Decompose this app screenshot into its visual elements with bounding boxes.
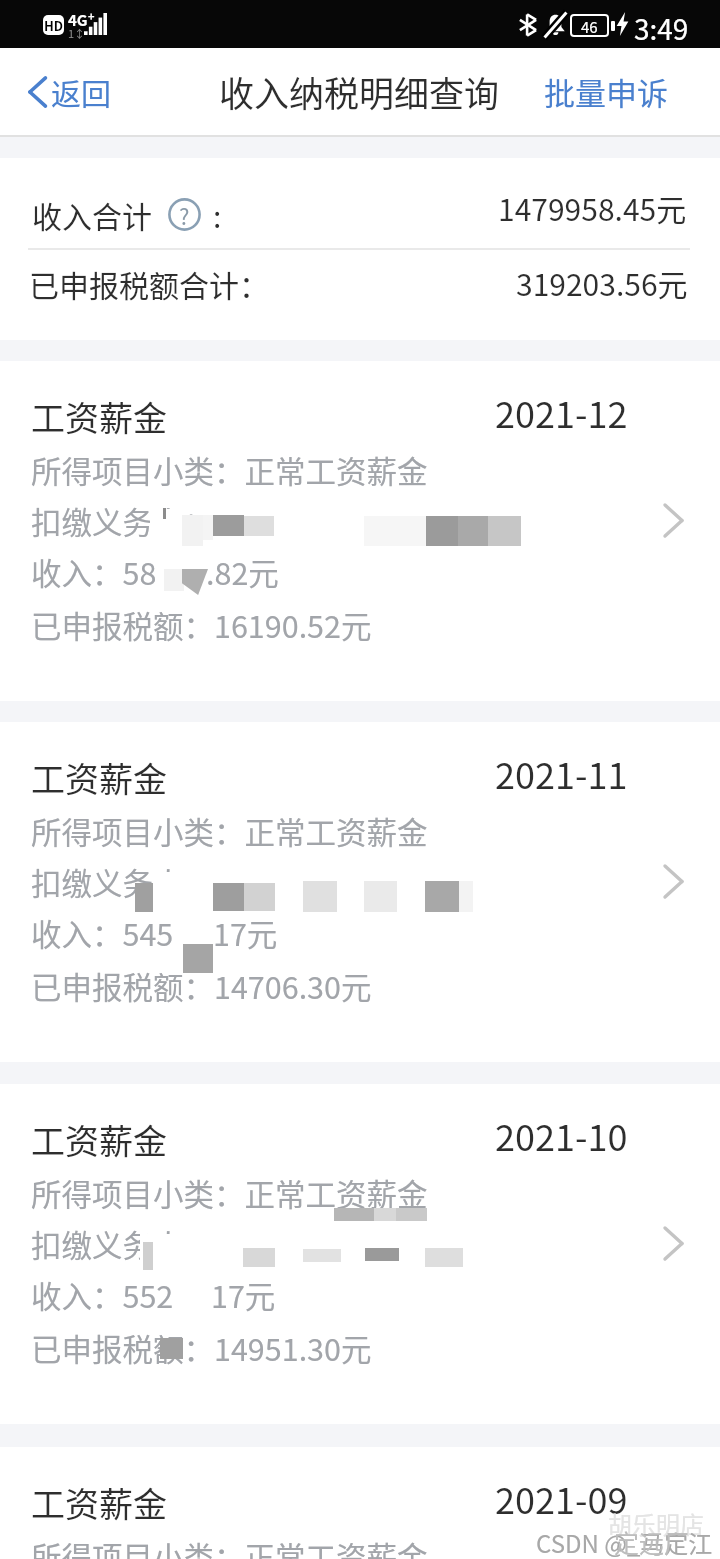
button[interactable]: 批量申诉 [526,55,720,128]
staticText: 1↕ [68,25,86,41]
staticText: 扣缴义务人： [31,499,214,543]
staticText: .82元 [206,550,279,594]
staticText: CSDN @_马定江 [536,1525,713,1559]
button[interactable]: 工资薪金 [0,361,720,701]
button[interactable]: 工资薪金 [0,1084,720,1424]
staticText: 2021-12 [495,386,628,438]
staticText: 4G [68,9,88,31]
staticText: 收入纳税明细查询 [219,66,500,117]
staticText: 17元 [211,1273,276,1317]
staticText: 2021-09 [495,1472,628,1524]
staticText: 收入：552 [31,1273,174,1317]
staticText: 返回 [51,70,111,113]
staticText: 1479958.45元 [498,186,687,229]
staticText: 所得项目小类：正常工资薪金 [31,448,428,492]
staticText: 批量申诉 [544,69,668,114]
button[interactable]: 返回 [0,56,129,127]
staticText: 已申报税额：14706.30元 [31,964,372,1008]
staticText: 46 [581,16,598,35]
staticText: 所得项目小类：正常工资薪金 [31,1171,428,1215]
staticText: 2021-11 [495,747,628,799]
staticText: 收入：545 [31,911,174,955]
staticText: 定远厂 [614,1524,690,1559]
staticText: 收入合计 [32,193,152,236]
staticText: 扣缴义务人： [31,860,214,904]
staticText: 2021-10 [495,1109,628,1161]
staticText: 17元 [213,911,278,955]
staticText: 胡乐明店 [608,1506,704,1541]
staticText: 所得项目小类：正常工资薪金 [31,809,428,853]
staticText: 工资薪金 [31,1115,167,1164]
staticText: 工资薪金 [31,1478,167,1527]
staticText: : [213,193,222,236]
staticText: + [88,8,95,24]
staticText: 收入：58 [31,550,157,594]
staticText: ? [179,199,190,231]
button[interactable]: 工资薪金 [0,722,720,1062]
staticText: 所得项目小类：正常工资薪金 [31,1534,428,1559]
button[interactable]: Help [168,198,201,231]
staticText: 扣缴义务人： [31,1222,214,1266]
staticText: 已申报税额：16190.52元 [31,603,372,647]
button[interactable]: 工资薪金 [0,1447,720,1559]
staticText: 已申报税额合计： [29,262,269,305]
staticText: 3:49 [634,8,689,49]
staticText: 319203.56元 [516,261,688,304]
staticText: HD [44,16,64,35]
staticText: 工资薪金 [31,753,167,802]
staticText: 工资薪金 [31,392,167,441]
staticText: 已申报税额：14951.30元 [31,1326,372,1370]
